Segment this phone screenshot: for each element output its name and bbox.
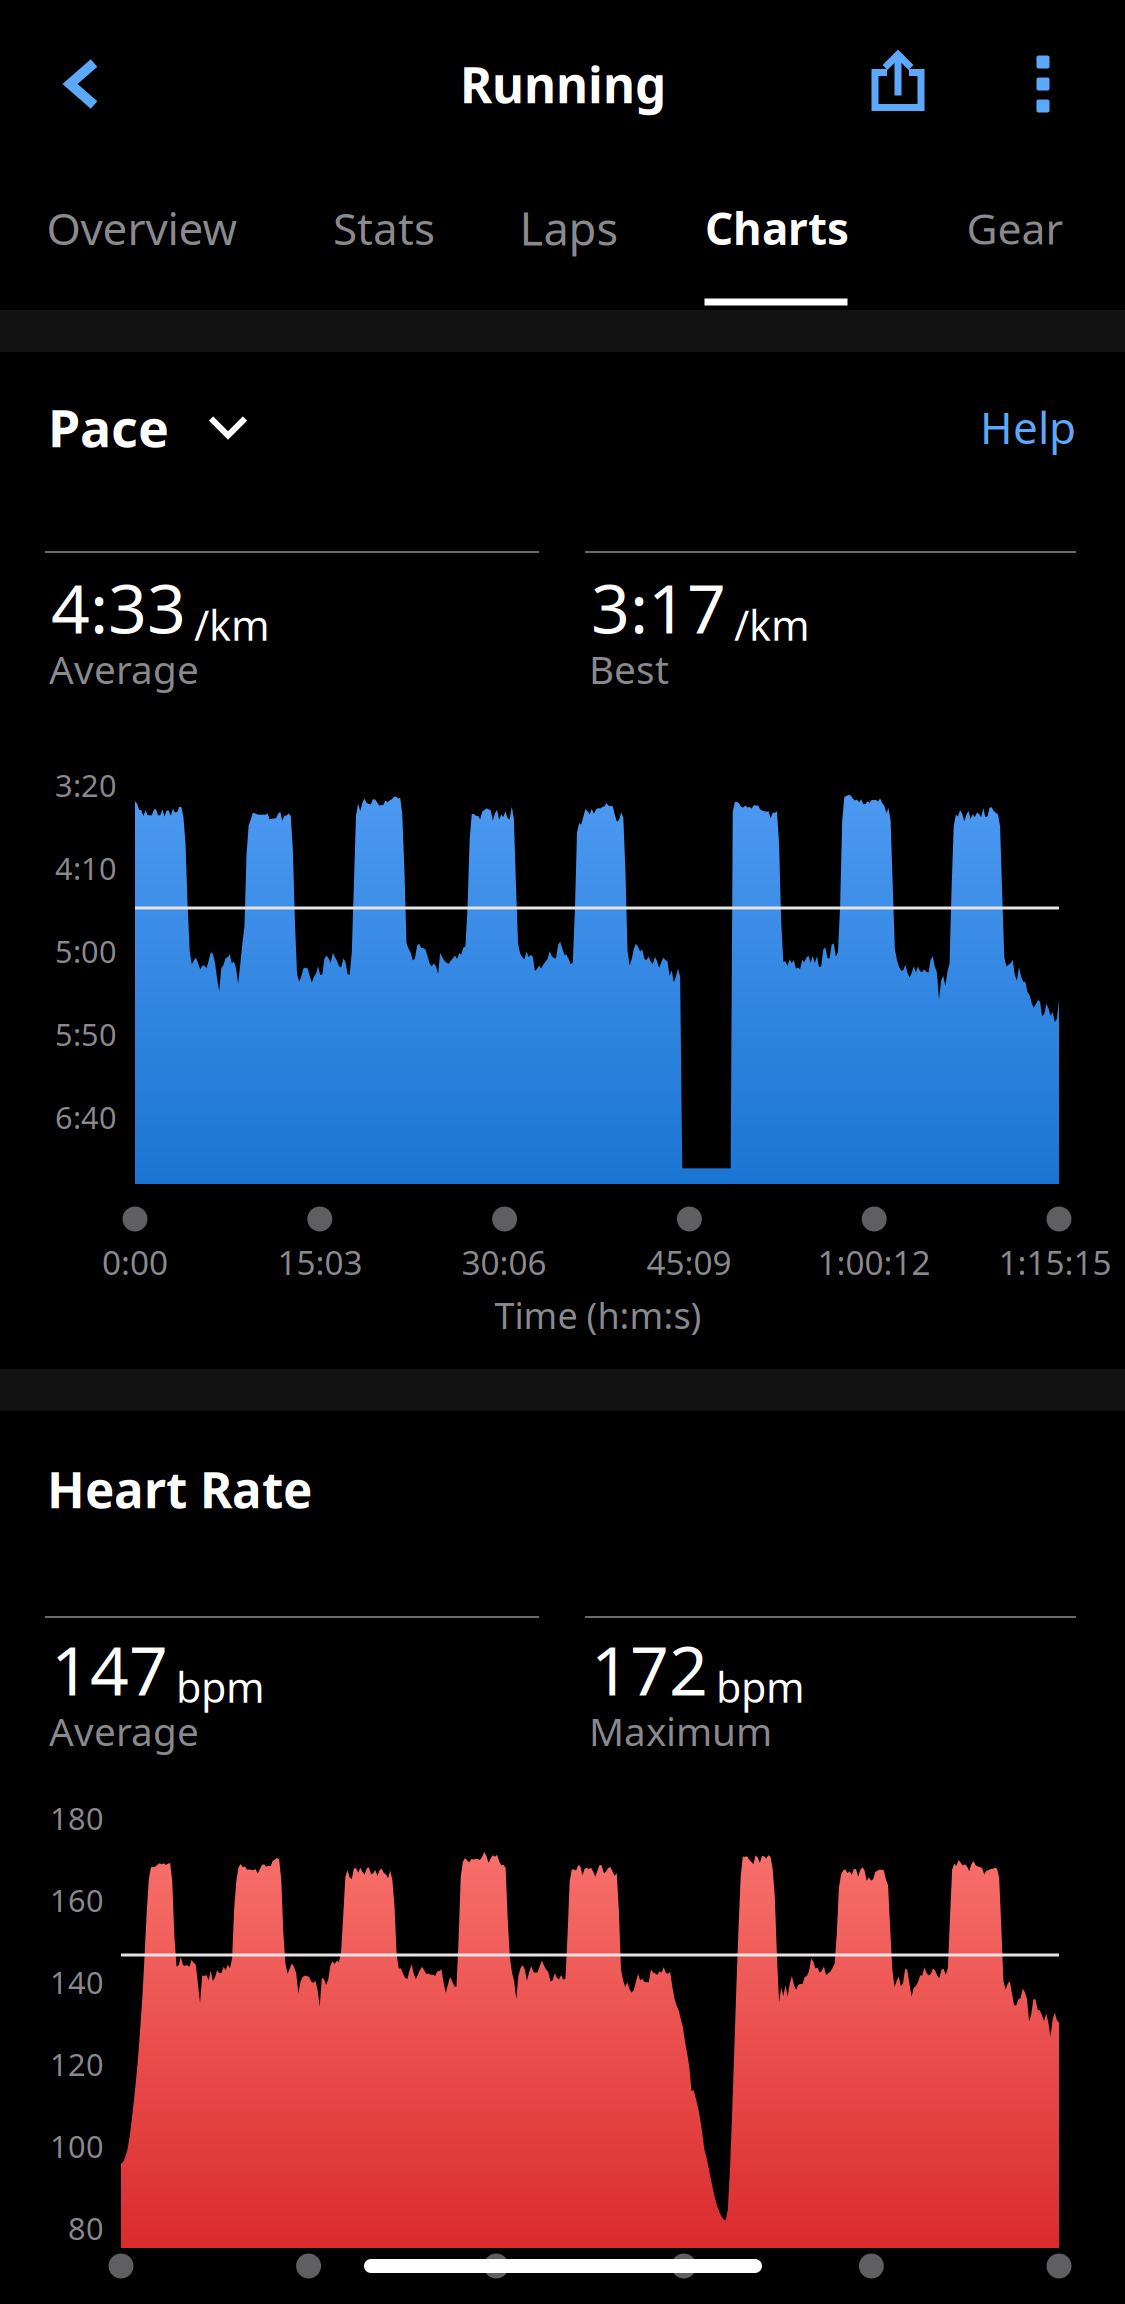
staticText: 45:09 — [646, 1240, 731, 1284]
staticText: Heart Rate — [47, 1456, 312, 1522]
staticText: 180 — [50, 1798, 104, 1838]
staticText: Laps — [519, 198, 618, 258]
button[interactable]: Gear — [940, 161, 1090, 295]
staticText: bpm — [716, 1659, 805, 1714]
staticText: Time (h:m:s) — [494, 1291, 701, 1339]
button[interactable]: Share — [836, 16, 960, 144]
staticText: Help — [980, 398, 1076, 456]
staticText: 15:03 — [277, 1240, 362, 1284]
button[interactable]: Stats — [309, 161, 459, 295]
staticText: 6:40 — [55, 1097, 117, 1137]
staticText: /km — [734, 597, 810, 652]
staticText: Maximum — [589, 1705, 772, 1757]
staticText: /km — [194, 597, 270, 652]
staticText: Gear — [966, 200, 1063, 256]
staticText: 5:00 — [55, 931, 117, 971]
staticText: 3:20 — [55, 765, 117, 805]
staticText: 1:00:12 — [817, 1240, 930, 1284]
staticText: 147 — [51, 1624, 168, 1714]
button[interactable]: Help — [926, 382, 1076, 472]
staticText: 80 — [68, 2208, 104, 2248]
staticText: 4:33 — [51, 562, 186, 652]
button[interactable]: Pace — [48, 379, 296, 475]
staticText: 4:10 — [55, 848, 117, 888]
button[interactable]: Overview — [27, 161, 257, 295]
staticText: Pace — [48, 392, 169, 462]
button[interactable]: Charts — [687, 161, 867, 295]
staticText: 172 — [591, 1624, 708, 1714]
staticText: Overview — [46, 199, 237, 257]
staticText: 3:17 — [591, 562, 726, 652]
staticText: Stats — [333, 199, 435, 257]
staticText: 160 — [50, 1880, 104, 1920]
staticText: Average — [49, 1705, 199, 1757]
staticText: 5:50 — [55, 1014, 117, 1054]
staticText: bpm — [176, 1659, 265, 1714]
staticText: Charts — [705, 199, 849, 257]
button[interactable]: Laps — [499, 161, 639, 295]
staticText: 30:06 — [461, 1240, 546, 1284]
button[interactable]: More options — [991, 20, 1095, 148]
button[interactable]: Back — [17, 19, 147, 149]
staticText: 0:00 — [102, 1240, 168, 1284]
staticText: Best — [589, 643, 669, 695]
staticText: 1:15:15 — [998, 1240, 1111, 1284]
staticText: Running — [460, 51, 666, 117]
staticText: 140 — [50, 1962, 104, 2002]
staticText: 100 — [50, 2126, 104, 2166]
staticText: 120 — [50, 2044, 104, 2084]
staticText: Average — [49, 643, 199, 695]
